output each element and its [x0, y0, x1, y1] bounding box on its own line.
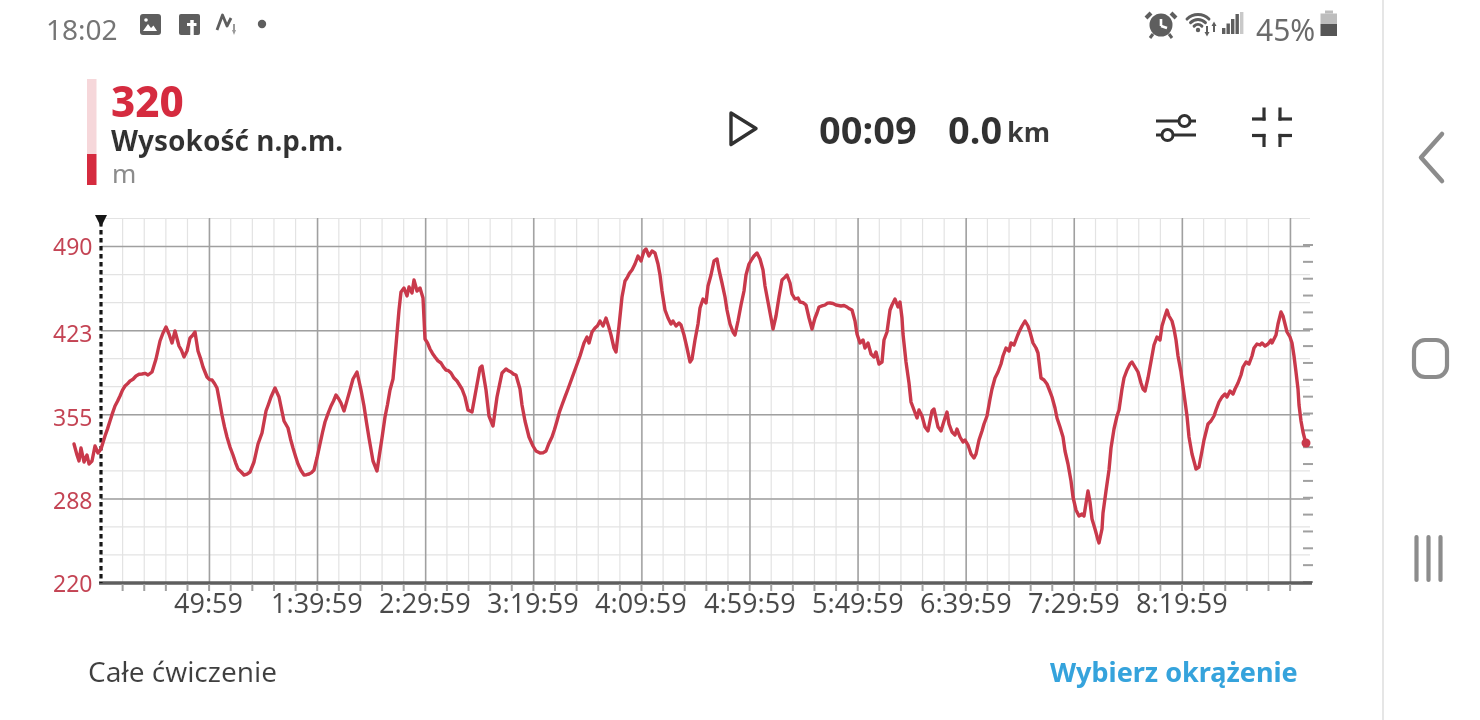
staticText: m: [112, 155, 137, 190]
button[interactable]: Całe ćwiczenie: [80, 648, 320, 694]
staticText: 6:39:59: [920, 584, 1012, 620]
button[interactable]: 320: [85, 75, 345, 187]
staticText: 45%: [1256, 9, 1316, 50]
staticText: 18:02: [46, 10, 118, 48]
button[interactable]: Wybierz okrążenie: [886, 648, 1306, 694]
button[interactable]: [1242, 97, 1302, 157]
staticText: Wysokość n.p.m.: [111, 121, 344, 159]
staticText: 0.0: [948, 103, 1003, 153]
staticText: 355: [53, 401, 93, 432]
staticText: 4:59:59: [704, 584, 796, 620]
staticText: 4:09:59: [595, 584, 687, 620]
staticText: km: [1007, 113, 1051, 150]
staticText: 5:49:59: [812, 584, 904, 620]
staticText: 288: [53, 484, 93, 515]
button[interactable]: [1146, 101, 1206, 155]
staticText: 1:39:59: [271, 584, 363, 620]
staticText: 3:19:59: [487, 584, 579, 620]
staticText: 490: [53, 230, 93, 261]
staticText: 220: [53, 567, 93, 598]
button[interactable]: [1400, 327, 1464, 391]
staticText: 8:19:59: [1136, 584, 1228, 620]
staticText: 00:09: [819, 103, 917, 153]
staticText: Całe ćwiczenie: [88, 652, 278, 690]
staticText: 320: [111, 72, 184, 129]
staticText: 7:29:59: [1028, 584, 1120, 620]
staticText: 2:29:59: [379, 584, 471, 620]
button[interactable]: [1400, 125, 1464, 189]
staticText: Wybierz okrążenie: [1050, 653, 1298, 690]
staticText: 49:59: [174, 584, 244, 620]
staticText: 423: [53, 317, 93, 348]
button[interactable]: [715, 98, 775, 160]
button[interactable]: [1400, 527, 1464, 591]
